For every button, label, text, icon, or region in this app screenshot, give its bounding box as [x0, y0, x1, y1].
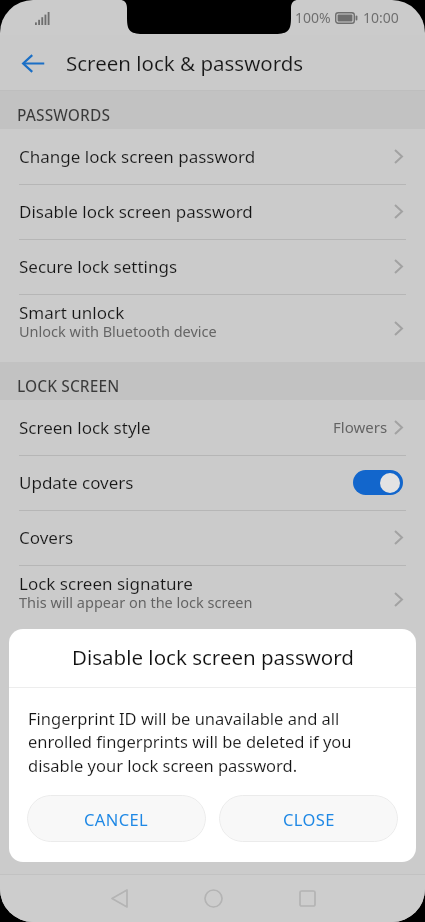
button[interactable]: Disable lock screen password [0, 184, 425, 239]
staticText: Smart unlock [19, 301, 125, 324]
staticText: Screen lock style [19, 416, 151, 439]
button[interactable]: Covers [0, 510, 425, 565]
button[interactable]: Lock screen signature [0, 565, 425, 633]
button[interactable]: CANCEL [27, 795, 206, 842]
button[interactable]: Back [95, 874, 143, 922]
staticText: 100% [295, 8, 331, 27]
staticText: Update covers [19, 471, 134, 494]
button[interactable]: Recent apps [283, 874, 331, 922]
staticText: Flowers [333, 417, 388, 437]
staticText: Covers [19, 526, 74, 549]
staticText: Unlock with Bluetooth device [19, 321, 217, 341]
staticText: Screen lock & passwords [66, 49, 304, 77]
staticText: CLOSE [283, 808, 335, 830]
button[interactable]: CLOSE [219, 795, 398, 842]
staticText: This will appear on the lock screen [19, 592, 253, 612]
staticText: 10:00 [363, 8, 399, 27]
button[interactable]: Screen lock style [0, 400, 425, 455]
staticText: LOCK SCREEN [17, 375, 120, 396]
button[interactable]: Secure lock settings [0, 239, 425, 294]
button[interactable]: Update covers [0, 455, 425, 510]
button[interactable]: Change lock screen password [0, 129, 425, 184]
button[interactable]: Smart unlock [0, 294, 425, 362]
staticText: Disable lock screen password [72, 643, 354, 671]
staticText: Change lock screen password [19, 145, 256, 168]
staticText: Secure lock settings [19, 255, 178, 278]
button[interactable]: Home [189, 874, 237, 922]
staticText: Lock screen signature [19, 572, 193, 595]
staticText: PASSWORDS [17, 104, 111, 125]
staticText: Disable lock screen password [19, 200, 253, 223]
staticText: Fingerprint ID will be unavailable and a… [28, 707, 373, 777]
staticText: CANCEL [84, 808, 149, 830]
button[interactable]: Navigate up [10, 40, 56, 86]
